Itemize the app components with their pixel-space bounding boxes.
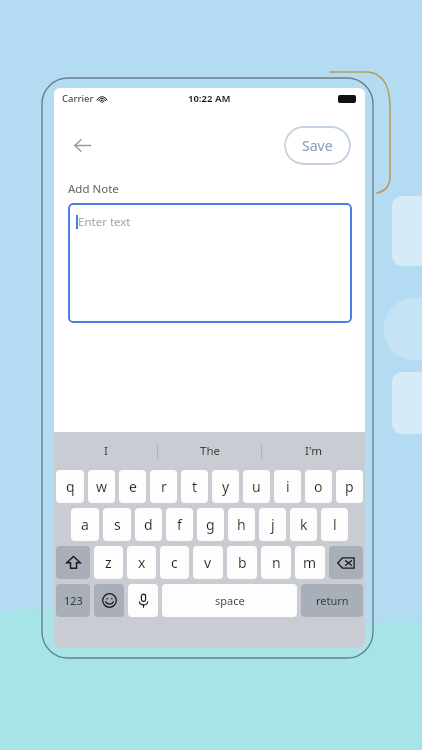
staticText: g: [206, 515, 215, 534]
staticText: l: [333, 515, 337, 534]
staticText: t: [192, 477, 198, 496]
staticText: Save: [302, 136, 333, 155]
button[interactable]: h: [228, 508, 255, 541]
staticText: e: [129, 477, 137, 496]
button[interactable]: c: [160, 546, 189, 579]
button[interactable]: Save: [284, 126, 351, 165]
button[interactable]: I'm: [262, 432, 365, 470]
staticText: i: [286, 477, 290, 496]
staticText: return: [316, 593, 349, 608]
button[interactable]: s: [103, 508, 131, 541]
button[interactable]: b: [227, 546, 257, 579]
staticText: Carrier: [62, 92, 94, 105]
staticText: Add Note: [68, 181, 119, 197]
button[interactable]: t: [181, 470, 208, 503]
staticText: 10:22 AM: [188, 92, 231, 105]
staticText: x: [138, 553, 146, 572]
staticText: The: [200, 443, 220, 459]
button[interactable]: u: [243, 470, 270, 503]
staticText: p: [345, 477, 354, 496]
button[interactable]: Emoji: [94, 584, 124, 617]
staticText: w: [96, 477, 108, 496]
button[interactable]: q: [56, 470, 84, 503]
button[interactable]: w: [88, 470, 115, 503]
button[interactable]: f: [166, 508, 193, 541]
staticText: m: [303, 553, 317, 572]
staticText: v: [204, 553, 212, 572]
staticText: space: [215, 593, 245, 608]
button[interactable]: g: [197, 508, 224, 541]
button[interactable]: d: [135, 508, 162, 541]
staticText: Enter text: [78, 214, 131, 230]
button[interactable]: m: [295, 546, 325, 579]
staticText: o: [314, 477, 323, 496]
button[interactable]: i: [274, 470, 301, 503]
button[interactable]: Enter text: [68, 203, 352, 323]
button[interactable]: z: [94, 546, 123, 579]
staticText: z: [105, 553, 112, 572]
button[interactable]: 123: [56, 584, 90, 617]
button[interactable]: Shift: [56, 546, 90, 579]
staticText: b: [238, 553, 247, 572]
button[interactable]: return: [301, 584, 363, 617]
staticText: s: [114, 515, 121, 534]
staticText: I: [104, 443, 108, 459]
button[interactable]: j: [259, 508, 286, 541]
staticText: r: [161, 477, 167, 496]
staticText: 123: [64, 593, 83, 608]
button[interactable]: k: [290, 508, 317, 541]
button[interactable]: p: [336, 470, 363, 503]
button[interactable]: I: [54, 432, 157, 470]
staticText: c: [171, 553, 178, 572]
staticText: a: [81, 515, 89, 534]
button[interactable]: r: [150, 470, 177, 503]
button[interactable]: y: [212, 470, 239, 503]
staticText: d: [144, 515, 153, 534]
button[interactable]: space: [162, 584, 297, 617]
staticText: k: [300, 515, 308, 534]
button[interactable]: Back: [62, 125, 102, 165]
staticText: I'm: [305, 443, 322, 459]
staticText: y: [222, 477, 230, 496]
button[interactable]: Dictate: [128, 584, 158, 617]
button[interactable]: o: [305, 470, 332, 503]
button[interactable]: x: [127, 546, 156, 579]
staticText: q: [66, 477, 75, 496]
button[interactable]: v: [193, 546, 223, 579]
button[interactable]: l: [321, 508, 348, 541]
button[interactable]: Backspace: [329, 546, 363, 579]
button[interactable]: n: [261, 546, 291, 579]
staticText: h: [237, 515, 246, 534]
staticText: u: [252, 477, 261, 496]
staticText: f: [177, 515, 182, 534]
button[interactable]: a: [71, 508, 99, 541]
staticText: j: [271, 515, 275, 534]
button[interactable]: The: [158, 432, 261, 470]
staticText: n: [272, 553, 281, 572]
button[interactable]: e: [119, 470, 146, 503]
